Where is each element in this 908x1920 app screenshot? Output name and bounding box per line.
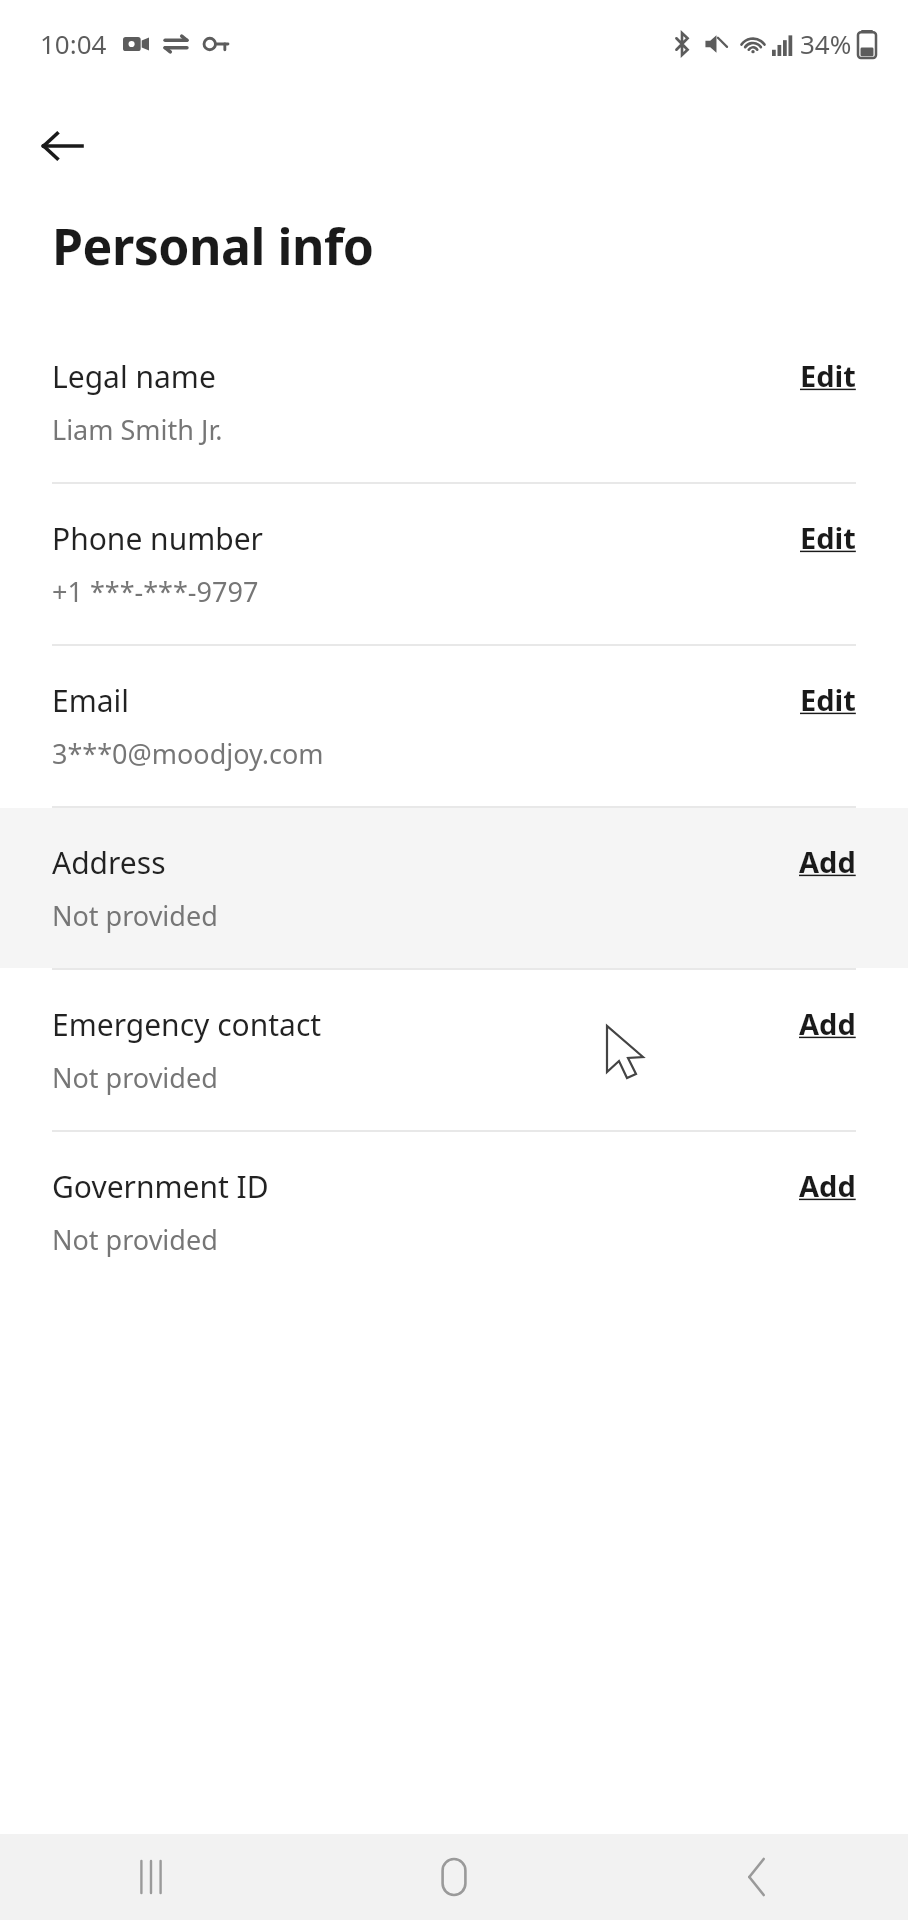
staticText: Edit (800, 356, 856, 395)
staticText: Not provided (52, 1221, 218, 1258)
staticText: Add (799, 1004, 856, 1043)
button[interactable]: Emergency contact (0, 970, 908, 1130)
button[interactable]: Home (302, 1834, 605, 1920)
button[interactable]: Address (0, 808, 908, 968)
button[interactable]: Add (799, 1004, 856, 1043)
staticText: 3***0@moodjoy.com (52, 735, 324, 772)
staticText: Not provided (52, 897, 218, 934)
button[interactable]: Edit (800, 680, 856, 719)
staticText: Personal info (52, 212, 374, 280)
staticText: 10:04 (40, 26, 107, 61)
button[interactable]: Edit (800, 518, 856, 557)
staticText: +1 ***-***-9797 (52, 573, 259, 610)
button[interactable]: Phone number (0, 484, 908, 644)
staticText: Legal name (52, 356, 216, 397)
staticText: Government ID (52, 1166, 269, 1207)
staticText: Edit (800, 518, 856, 557)
button[interactable]: Back (605, 1834, 908, 1920)
button[interactable]: Add (799, 842, 856, 881)
button[interactable]: Add (799, 1166, 856, 1205)
button[interactable]: Back (26, 110, 98, 182)
button[interactable]: Recent apps (0, 1834, 302, 1920)
staticText: 34% (800, 26, 852, 61)
button[interactable]: Government ID (0, 1132, 908, 1292)
staticText: Add (799, 1166, 856, 1205)
staticText: Email (52, 680, 130, 721)
staticText: Phone number (52, 518, 263, 559)
staticText: Not provided (52, 1059, 218, 1096)
staticText: Emergency contact (52, 1004, 322, 1045)
button[interactable]: Email (0, 646, 908, 806)
staticText: Address (52, 842, 166, 883)
staticText: Liam Smith Jr. (52, 411, 223, 448)
staticText: Edit (800, 680, 856, 719)
staticText: Add (799, 842, 856, 881)
button[interactable]: Legal name (0, 322, 908, 482)
button[interactable]: Edit (800, 356, 856, 395)
